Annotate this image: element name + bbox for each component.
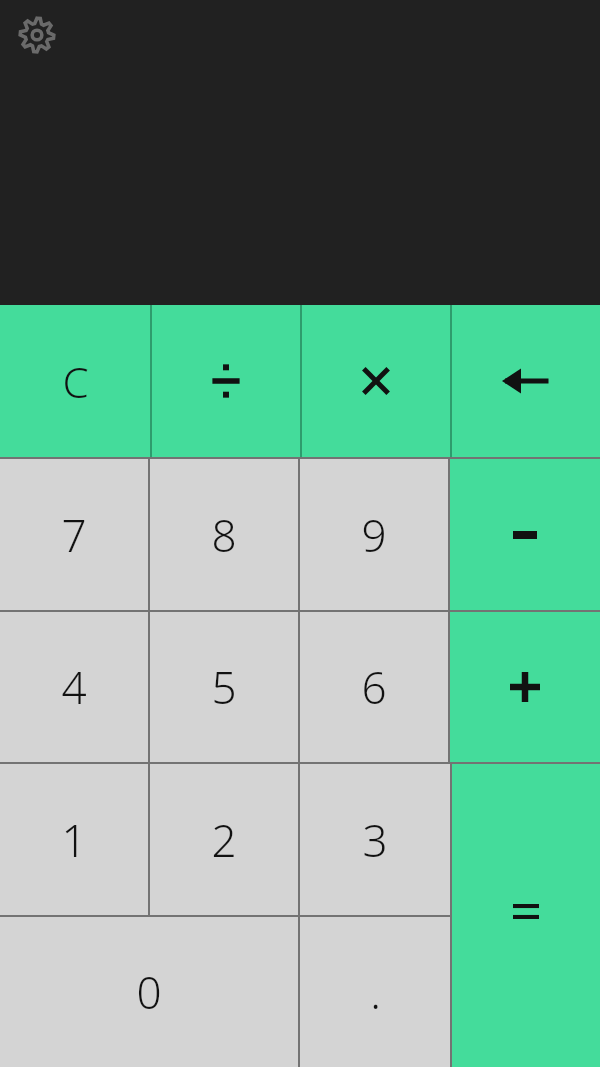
button[interactable]: .: [300, 917, 450, 1067]
button[interactable]: Equals: [452, 764, 600, 1067]
button[interactable]: 8: [150, 459, 298, 610]
button[interactable]: Backspace: [452, 305, 600, 457]
button[interactable]: 4: [0, 612, 148, 762]
staticText: 0: [136, 962, 162, 1022]
button[interactable]: Minus: [450, 459, 600, 610]
button[interactable]: 5: [150, 612, 298, 762]
button[interactable]: C: [0, 305, 150, 457]
button[interactable]: 3: [300, 764, 450, 915]
staticText: 2: [211, 810, 237, 870]
button[interactable]: 9: [300, 459, 448, 610]
button[interactable]: 7: [0, 459, 148, 610]
staticText: 7: [61, 505, 87, 565]
staticText: 8: [211, 505, 237, 565]
button[interactable]: 1: [0, 764, 148, 915]
staticText: 6: [361, 657, 387, 717]
button[interactable]: Settings: [14, 12, 60, 58]
button[interactable]: 2: [150, 764, 298, 915]
button[interactable]: Multiply: [302, 305, 450, 457]
button[interactable]: Divide: [152, 305, 300, 457]
staticText: 5: [211, 657, 237, 717]
button[interactable]: 0: [0, 917, 298, 1067]
button[interactable]: 6: [300, 612, 448, 762]
staticText: 3: [362, 810, 388, 870]
staticText: .: [370, 962, 381, 1022]
button[interactable]: Plus: [450, 612, 600, 762]
staticText: 4: [61, 657, 87, 717]
staticText: C: [62, 353, 89, 410]
staticText: 9: [361, 505, 387, 565]
staticText: 1: [61, 810, 87, 870]
